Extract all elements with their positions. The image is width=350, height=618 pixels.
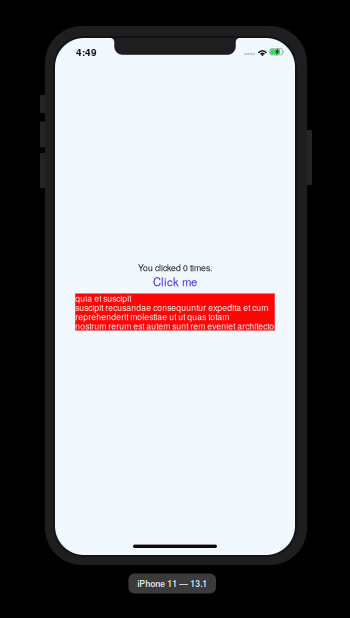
staticText: iPhone 11 — 13.1 [137, 577, 207, 590]
staticText: quia et suscipit [75, 292, 131, 304]
staticText: You clicked 0 times. [138, 261, 212, 274]
staticText: 4:49 [76, 45, 97, 59]
staticText: reprehenderit molestiae ut ut quas totam [75, 310, 229, 323]
button[interactable]: Click me [153, 272, 197, 290]
staticText: Click me [153, 273, 197, 289]
staticText: suscipit recusandae consequuntur expedit… [75, 301, 268, 313]
button[interactable]: iPhone 11 — 13.1 [128, 573, 216, 593]
staticText: nostrum rerum est autem sunt rem eveniet… [75, 320, 274, 332]
